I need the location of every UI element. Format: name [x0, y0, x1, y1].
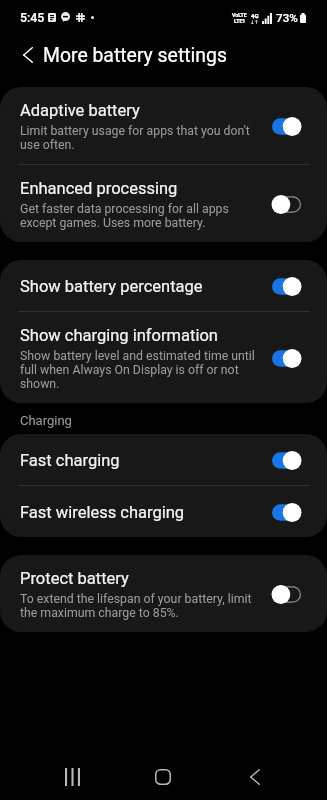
- staticText: LTE1: [234, 18, 246, 24]
- staticText: Show charging information: [20, 326, 218, 345]
- staticText: Charging: [20, 413, 72, 428]
- button[interactable]: Enhanced processing: [0, 165, 327, 242]
- staticText: Show battery level and estimated time un…: [20, 349, 260, 391]
- button[interactable]: Off: [270, 194, 303, 215]
- button[interactable]: Navigate up: [0, 30, 56, 80]
- staticText: Limit battery usage for apps that you do…: [20, 124, 260, 152]
- button[interactable]: Show charging information: [0, 312, 327, 403]
- button[interactable]: Adaptive battery: [0, 87, 327, 164]
- staticText: Get faster data processing for all apps …: [20, 202, 260, 230]
- staticText: ↓↑: [250, 19, 259, 25]
- button[interactable]: Protect battery: [0, 555, 327, 632]
- staticText: VoLTE: [232, 12, 247, 18]
- staticText: Enhanced processing: [20, 179, 178, 198]
- button[interactable]: On: [270, 348, 303, 369]
- button[interactable]: On: [270, 502, 303, 523]
- button[interactable]: Recent apps: [49, 754, 95, 800]
- button[interactable]: Fast wireless charging: [0, 486, 327, 537]
- staticText: Show battery percentage: [20, 277, 203, 296]
- button[interactable]: On: [270, 276, 303, 297]
- button[interactable]: Off: [270, 584, 303, 605]
- staticText: 73%: [276, 11, 298, 25]
- button[interactable]: On: [270, 116, 303, 137]
- staticText: To extend the lifespan of your battery, …: [20, 592, 260, 620]
- button[interactable]: Back: [232, 754, 278, 800]
- staticText: Protect battery: [20, 569, 129, 588]
- staticText: Adaptive battery: [20, 101, 140, 120]
- staticText: More battery settings: [43, 44, 227, 67]
- button[interactable]: Home: [140, 754, 186, 800]
- button[interactable]: Fast charging: [0, 434, 327, 485]
- staticText: 4G: [251, 12, 259, 19]
- button[interactable]: Show battery percentage: [0, 260, 327, 311]
- staticText: Fast charging: [20, 451, 120, 470]
- staticText: 5:45: [20, 11, 45, 25]
- staticText: Fast wireless charging: [20, 503, 185, 522]
- button[interactable]: On: [270, 450, 303, 471]
